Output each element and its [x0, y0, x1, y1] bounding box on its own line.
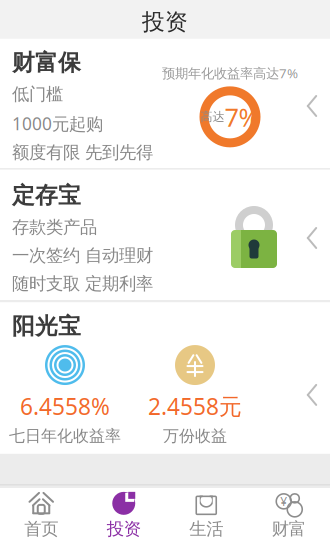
- staticText: 财富: [272, 518, 306, 540]
- staticText: 七日年化收益率: [9, 426, 121, 446]
- staticText: 6.4558%: [20, 391, 110, 421]
- staticText: 额度有限 先到先得: [12, 142, 153, 163]
- staticText: 2.4558元: [148, 391, 242, 421]
- staticText: 投资: [142, 8, 188, 36]
- staticText: 存款类产品: [12, 216, 97, 238]
- button[interactable]: 生活: [165, 485, 247, 546]
- staticText: ¥: [280, 493, 287, 509]
- staticText: 一次签约 自动理财: [12, 245, 153, 266]
- staticText: 阳光宝: [12, 312, 81, 340]
- staticText: 首页: [24, 518, 58, 540]
- staticText: 定存宝: [12, 182, 81, 209]
- staticText: 高达: [200, 109, 224, 124]
- button[interactable]: 财富保: [0, 39, 330, 173]
- staticText: 财富保: [12, 49, 81, 77]
- staticText: 预期年化收益率高达7%: [162, 64, 298, 82]
- staticText: 1000元起购: [12, 112, 103, 135]
- staticText: 投资: [107, 518, 141, 540]
- staticText: 生活: [189, 518, 223, 540]
- staticText: 7%: [224, 100, 259, 134]
- button[interactable]: 投资: [82, 485, 165, 546]
- button[interactable]: 定存宝: [0, 170, 330, 306]
- button[interactable]: 阳光宝: [0, 302, 330, 454]
- staticText: 万份收益: [163, 426, 227, 446]
- button[interactable]: 首页: [0, 485, 82, 546]
- staticText: 随时支取 定期利率: [12, 273, 153, 294]
- staticText: 低门槛: [12, 84, 63, 105]
- button[interactable]: ¥: [247, 485, 330, 546]
